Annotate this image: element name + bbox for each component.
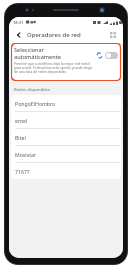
staticText: Permitir que su teléfono elija la mejor … [14,61,94,74]
staticText: PongoElHombro [15,100,56,107]
button[interactable]: Bitel [11,129,121,145]
staticText: 71677 [15,168,30,175]
staticText: Redes disponibles [14,87,51,93]
staticText: Seleccionar [14,46,44,53]
button[interactable]: entel [11,112,121,128]
button[interactable]: Movistar [11,146,121,162]
button[interactable]: PongoElHombro [11,95,121,111]
staticText: Bitel [15,134,26,141]
staticText: Operadores de red [27,31,81,39]
button[interactable]: Seleccionar [11,43,121,81]
staticText: automáticamente [14,53,61,60]
staticText: 18:31 [13,20,24,25]
button[interactable]: Seleccionar automáticamente [105,52,118,59]
button[interactable]: Back [13,29,25,41]
button[interactable]: 71677 [11,163,121,179]
staticText: Movistar [15,151,37,158]
staticText: entel [15,117,28,124]
button[interactable]: More options [107,29,119,41]
